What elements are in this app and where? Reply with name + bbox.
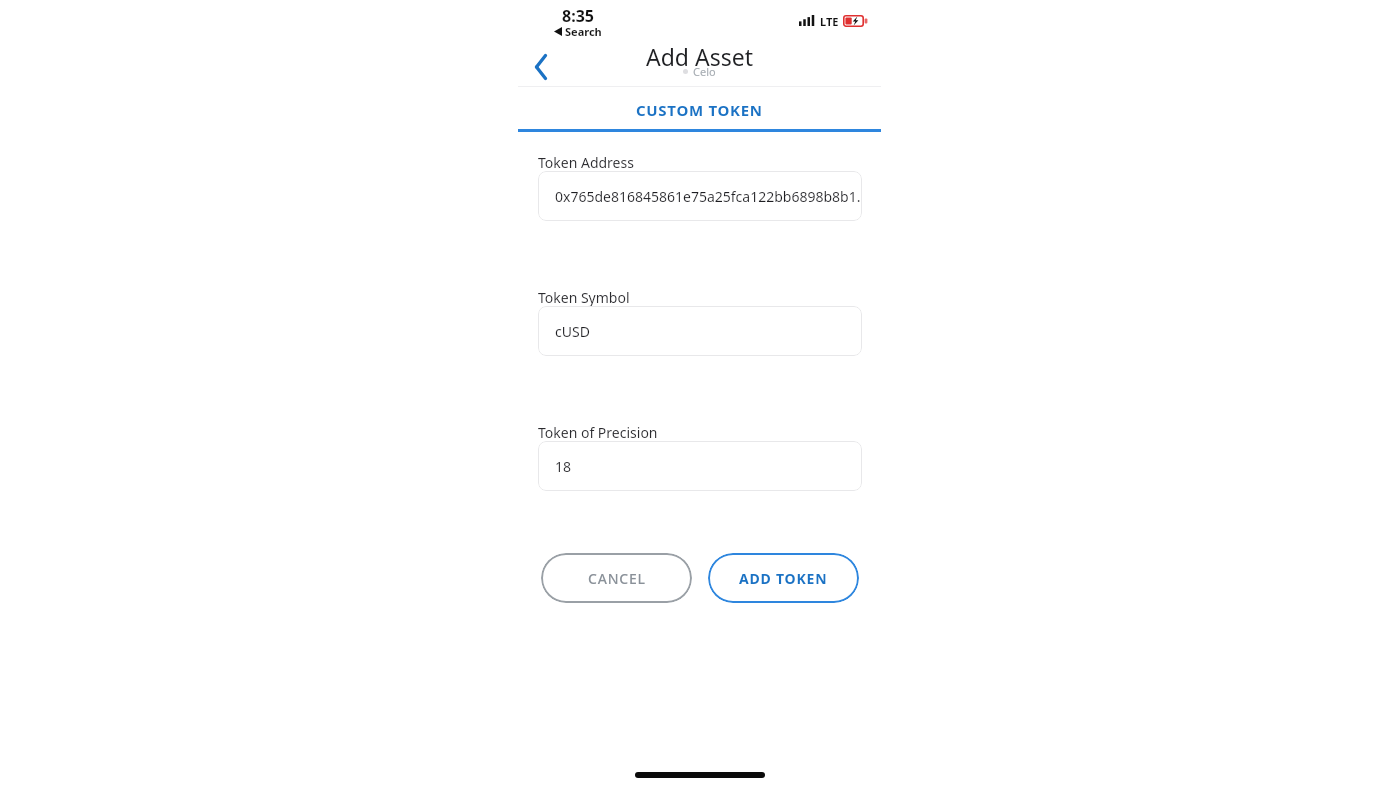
staticText: CUSTOM TOKEN bbox=[636, 100, 763, 120]
staticText: Celo bbox=[693, 64, 716, 79]
button[interactable]: 0x765de816845861e75a25fca122bb6898b8b1..… bbox=[538, 171, 862, 221]
staticText: cUSD bbox=[555, 322, 590, 341]
staticText: Token of Precision bbox=[538, 423, 658, 442]
staticText: LTE bbox=[820, 14, 839, 29]
staticText: CANCEL bbox=[588, 569, 646, 588]
staticText: Token Address bbox=[538, 153, 634, 172]
staticText: Token Symbol bbox=[538, 288, 630, 307]
button[interactable]: CUSTOM TOKEN bbox=[518, 87, 881, 132]
button[interactable]: cUSD bbox=[538, 306, 862, 356]
button[interactable]: 18 bbox=[538, 441, 862, 491]
staticText: 18 bbox=[555, 457, 572, 476]
button[interactable]: ADD TOKEN bbox=[708, 553, 859, 603]
staticText: ADD TOKEN bbox=[739, 569, 828, 588]
staticText: Add Asset bbox=[646, 41, 753, 72]
button[interactable]: CANCEL bbox=[541, 553, 692, 603]
staticText: 0x765de816845861e75a25fca122bb6898b8b1..… bbox=[555, 187, 862, 206]
button[interactable]: Back bbox=[518, 46, 562, 88]
staticText: 8:35 bbox=[562, 5, 594, 27]
staticText: Search bbox=[565, 24, 602, 39]
button[interactable]: Search bbox=[518, 24, 638, 39]
